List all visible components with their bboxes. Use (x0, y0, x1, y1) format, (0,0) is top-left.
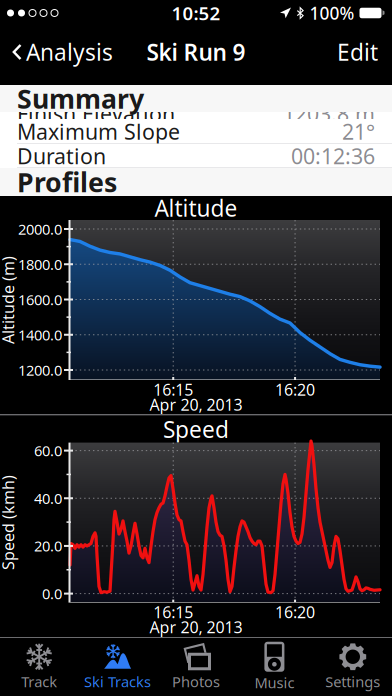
staticText: Speed (kmh) (0, 512, 55, 533)
staticText: Summary (17, 81, 144, 116)
button[interactable]: Track (0, 637, 78, 696)
staticText: 60.0 (34, 441, 62, 460)
staticText: 1800.0 (18, 254, 62, 274)
staticText: 10:52 (171, 1, 220, 25)
staticText: 1600.0 (18, 290, 62, 309)
staticText: 16:15 (153, 379, 193, 400)
staticText: Apr 20, 2013 (149, 616, 242, 638)
button[interactable]: Maximum Slope (0, 119, 392, 144)
staticText: 20.0 (34, 536, 62, 556)
staticText: Edit (337, 37, 378, 67)
staticText: Maximum Slope (17, 117, 180, 146)
staticText: Duration (17, 142, 106, 170)
staticText: 1200.0 (18, 360, 62, 380)
staticText: 16:20 (275, 379, 315, 400)
button[interactable]: Analysis (4, 32, 121, 72)
staticText: Analysis (26, 37, 113, 67)
staticText: 1400.0 (18, 325, 62, 344)
staticText: Track (21, 672, 57, 691)
staticText: Ski Run 9 (146, 37, 245, 67)
staticText: 2000.0 (18, 219, 62, 239)
staticText: Music (254, 673, 294, 692)
staticText: Ski Tracks (84, 672, 151, 691)
staticText: Apr 20, 2013 (149, 394, 242, 415)
button[interactable]: Ski Tracks (78, 637, 157, 696)
staticText: Speed (163, 414, 229, 444)
staticText: Altitude (m) (0, 289, 52, 311)
staticText: 21° (342, 117, 375, 146)
staticText: Finish Elevation (17, 99, 175, 128)
staticText: 0.0 (42, 584, 62, 603)
button[interactable]: Photos (157, 637, 235, 696)
staticText: Settings (325, 672, 380, 691)
staticText: 1203.8 m (283, 99, 375, 128)
staticText: 16:15 (153, 601, 193, 623)
button[interactable]: Settings (314, 637, 392, 696)
button[interactable]: Finish Elevation (0, 101, 392, 126)
button[interactable]: Duration (0, 144, 392, 168)
button[interactable]: Edit (327, 32, 388, 72)
button[interactable]: Music (235, 637, 314, 696)
staticText: 40.0 (34, 488, 62, 508)
staticText: Altitude (154, 193, 237, 223)
staticText: Profiles (17, 164, 117, 200)
staticText: 16:20 (275, 601, 315, 623)
staticText: 00:12:36 (291, 142, 375, 170)
staticText: 100% (309, 1, 354, 24)
staticText: Photos (172, 672, 220, 691)
